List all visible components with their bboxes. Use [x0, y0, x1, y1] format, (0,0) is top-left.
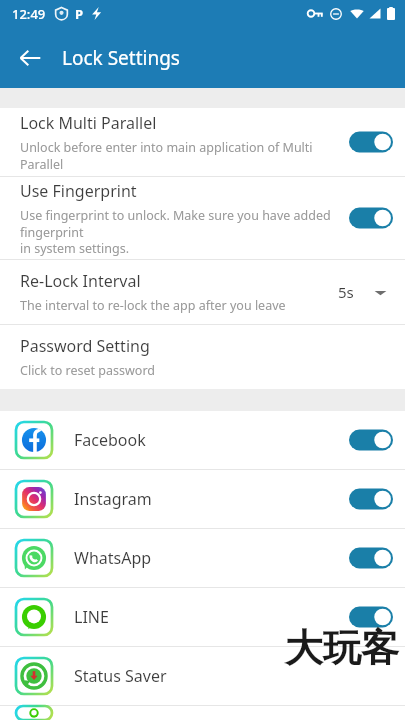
button[interactable]: Toggle — [349, 545, 393, 571]
button[interactable]: Back — [6, 34, 54, 82]
staticText: WhatsApp — [74, 547, 349, 569]
button[interactable]: Facebook — [0, 411, 405, 469]
staticText: 12:49 — [12, 5, 46, 23]
button[interactable]: Status Saver — [0, 647, 405, 705]
staticText: 5s — [338, 282, 354, 302]
button[interactable]: Re-Lock Interval — [0, 260, 405, 324]
staticText: Status Saver — [74, 665, 393, 687]
button[interactable]: Toggle — [349, 604, 393, 630]
staticText: Re-Lock Interval — [20, 270, 141, 292]
button[interactable]: Toggle — [349, 427, 393, 453]
staticText: Password Setting — [20, 335, 150, 357]
button[interactable]: LINE — [0, 588, 405, 646]
button[interactable]: Password Setting — [0, 325, 405, 389]
staticText: Use Fingerprint — [20, 180, 137, 202]
button[interactable]: WhatsApp — [0, 529, 405, 587]
staticText: Unlock before enter into main applicatio… — [20, 139, 349, 172]
staticText: P — [75, 5, 84, 23]
button[interactable]: Lock Multi Parallel — [0, 108, 405, 176]
staticText: Lock Multi Parallel — [20, 112, 157, 134]
button[interactable]: Toggle — [349, 129, 393, 155]
staticText: Lock Settings — [62, 45, 180, 71]
staticText: 大玩客 — [285, 624, 399, 672]
button[interactable] — [0, 706, 405, 720]
button[interactable]: Instagram — [0, 470, 405, 528]
staticText: The interval to re-lock the app after yo… — [20, 297, 286, 314]
staticText: Instagram — [74, 488, 349, 510]
button[interactable]: Toggle — [349, 205, 393, 231]
staticText: Click to reset password — [20, 362, 156, 379]
button[interactable]: Use Fingerprint — [0, 177, 405, 259]
staticText: LINE — [74, 606, 349, 628]
button[interactable]: Toggle — [349, 486, 393, 512]
staticText: Facebook — [74, 429, 349, 451]
staticText: Use fingerprint to unlock. Make sure you… — [20, 207, 349, 256]
